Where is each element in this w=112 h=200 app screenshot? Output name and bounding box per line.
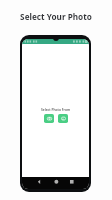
button[interactable]: Choose from gallery [58,114,68,123]
button[interactable]: Take photo with camera [44,114,54,123]
staticText: Select Your Photo [0,11,112,22]
staticText: Select Photo From [41,107,71,111]
